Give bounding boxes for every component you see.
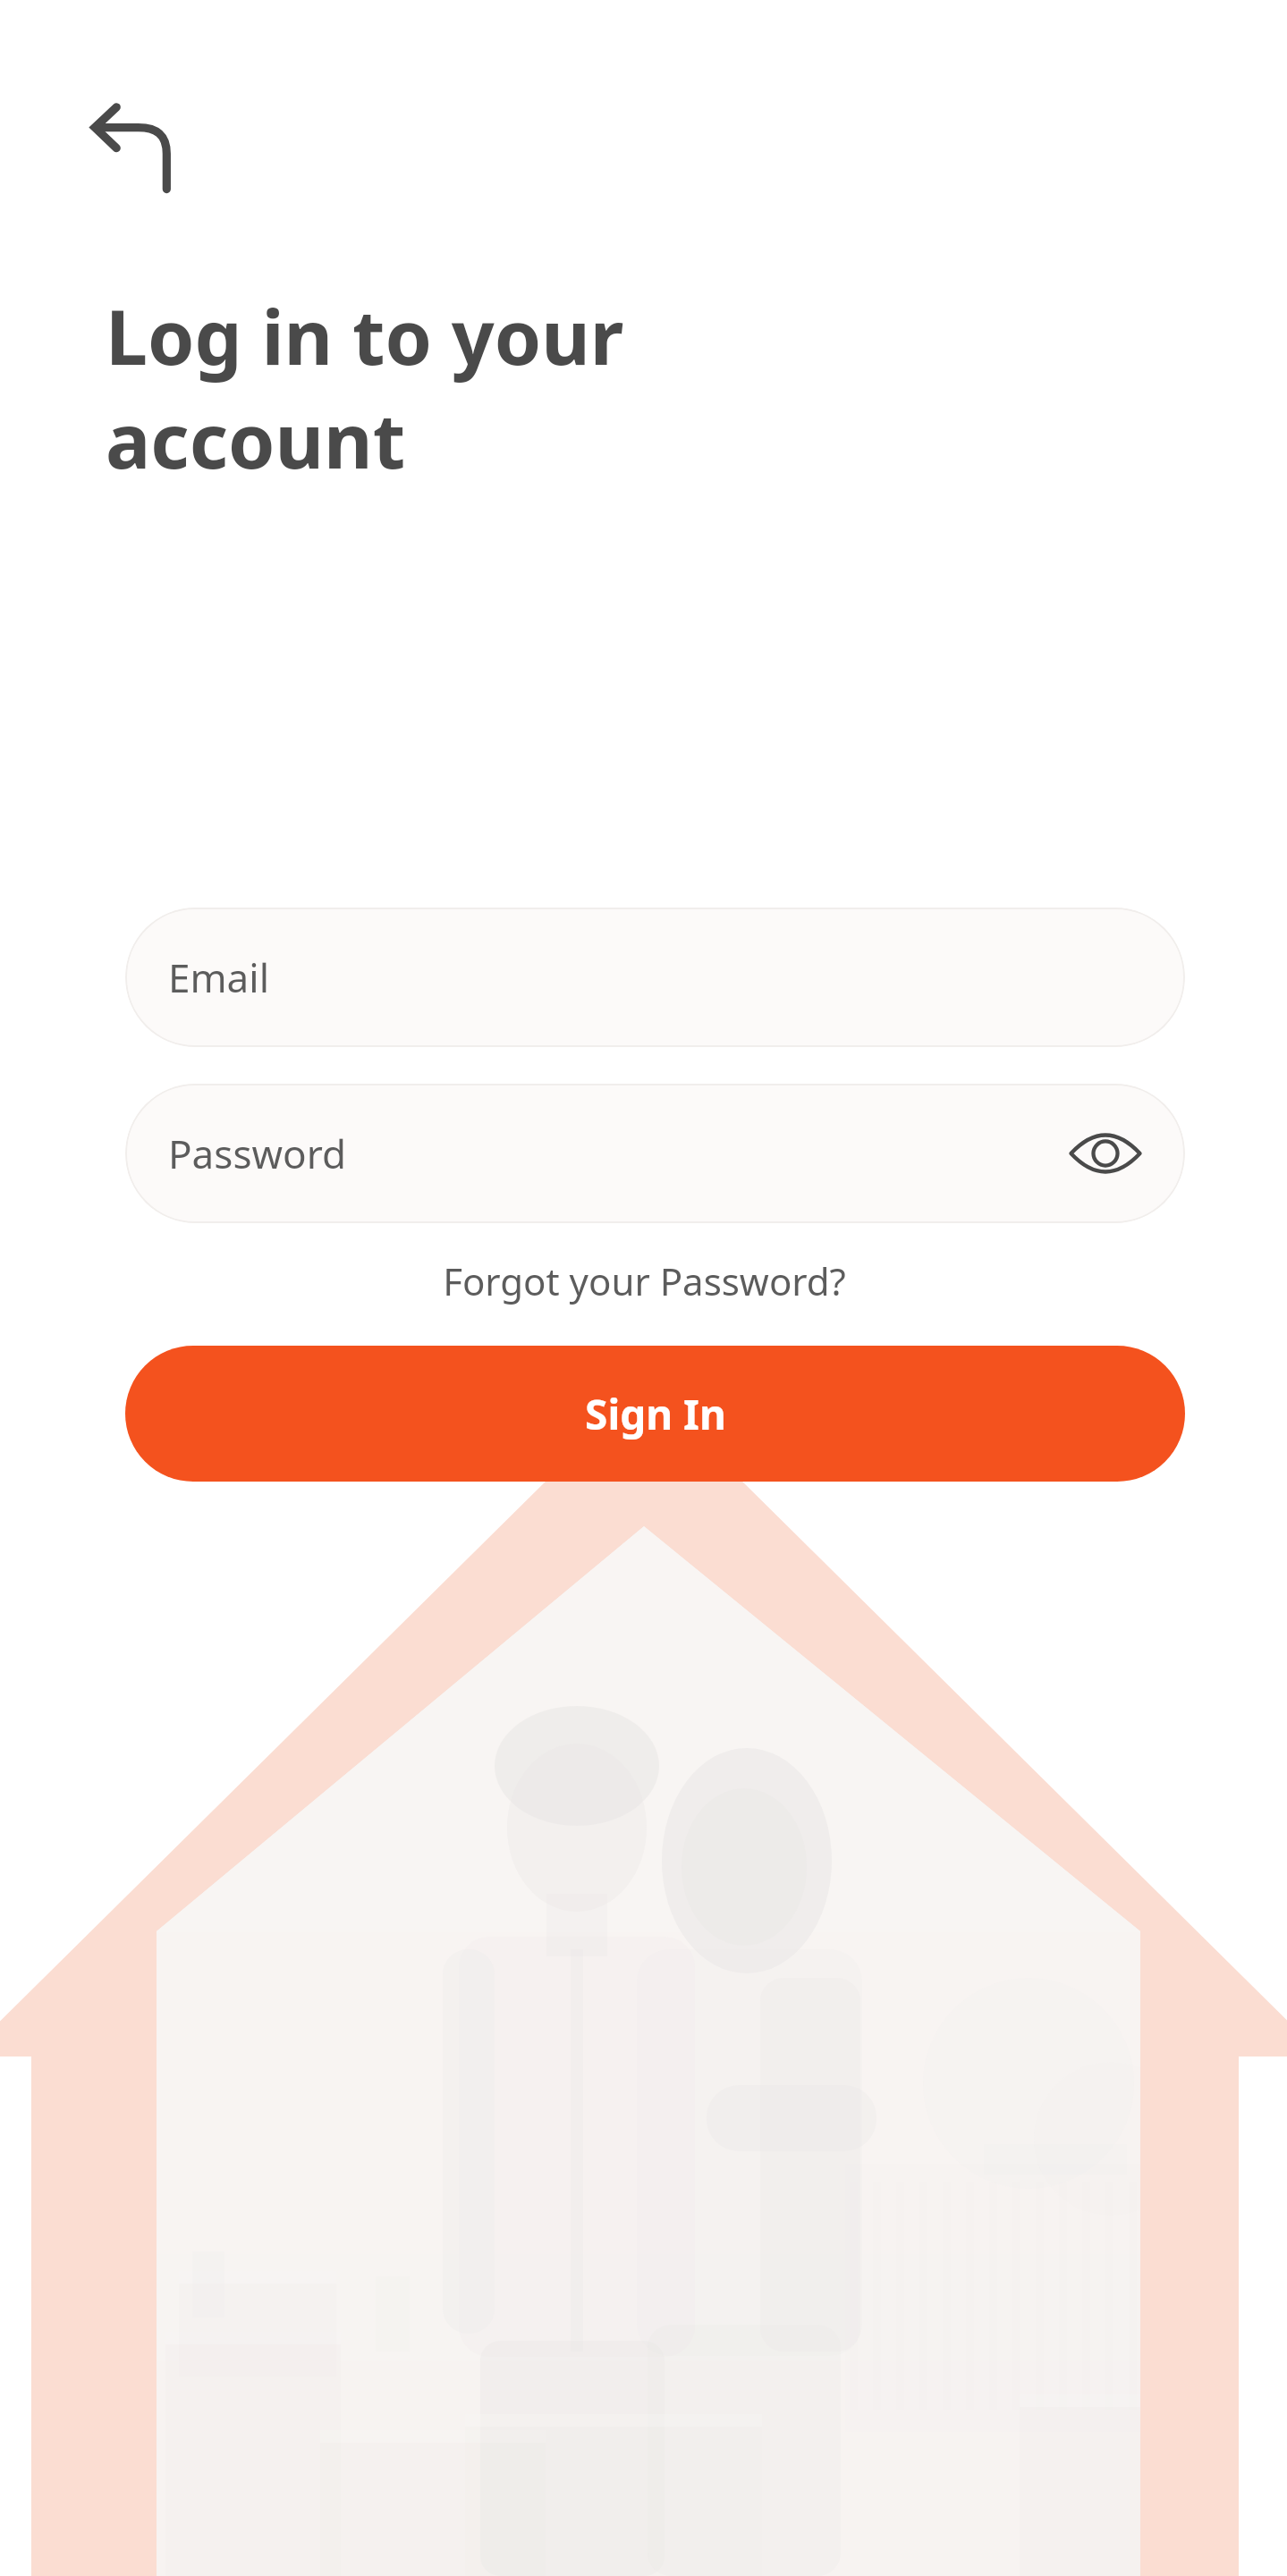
button[interactable]: Back (77, 88, 195, 206)
button[interactable]: Sign In (125, 1346, 1185, 1482)
staticText: Sign In (585, 1386, 726, 1442)
staticText: Email (168, 950, 269, 1004)
button[interactable]: Show password (1054, 1102, 1157, 1205)
button[interactable]: Password (125, 1084, 1185, 1223)
button[interactable]: Email (125, 908, 1185, 1047)
button[interactable]: Forgot your Password? (376, 1243, 912, 1318)
staticText: Forgot your Password? (443, 1255, 846, 1306)
staticText: Password (168, 1127, 347, 1180)
staticText: Log in to your account (106, 284, 803, 491)
